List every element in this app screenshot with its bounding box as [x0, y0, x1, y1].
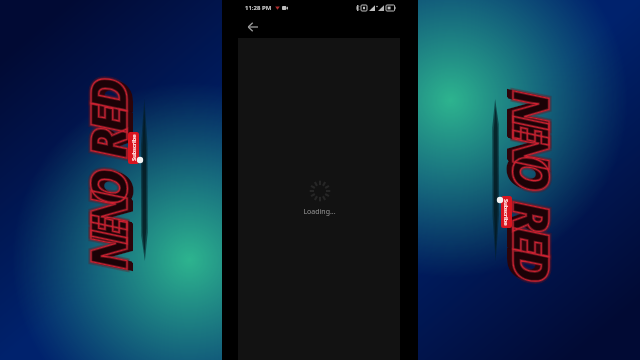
- staticText: NENO: [79, 183, 147, 271]
- staticText: NENO: [75, 182, 143, 270]
- staticText: RED: [74, 83, 142, 159]
- staticText: RED: [74, 83, 142, 159]
- staticText: NENO: [492, 88, 560, 176]
- staticText: RED: [74, 83, 142, 159]
- staticText: NENO: [74, 182, 142, 270]
- staticText: NENO: [496, 89, 564, 177]
- staticText: NENO: [493, 89, 561, 177]
- staticText: NENO: [495, 89, 563, 177]
- staticText: NENO: [74, 182, 142, 270]
- staticText: RED: [76, 84, 144, 160]
- staticText: NENO: [76, 182, 144, 270]
- staticText: NENO: [498, 90, 566, 178]
- staticText: NENO: [74, 182, 142, 270]
- staticText: RED: [496, 201, 564, 277]
- staticText: RED: [493, 200, 561, 276]
- staticText: 11:28 PM: [245, 4, 272, 12]
- staticText: NENO: [76, 183, 144, 271]
- staticText: RED: [75, 83, 143, 159]
- staticText: RED: [498, 201, 566, 277]
- staticText: RED: [77, 84, 145, 160]
- staticText: Subscribe: [502, 199, 510, 226]
- staticText: RED: [494, 200, 562, 276]
- staticText: RED: [497, 201, 565, 277]
- staticText: NENO: [74, 182, 142, 270]
- staticText: Subscribe: [130, 134, 138, 161]
- staticText: RED: [79, 84, 147, 160]
- staticText: RED: [76, 83, 144, 159]
- staticText: NENO: [494, 89, 562, 177]
- staticText: RED: [80, 85, 148, 161]
- staticText: NENO: [77, 183, 145, 271]
- staticText: NENO: [79, 183, 147, 271]
- staticText: RED: [498, 201, 566, 277]
- button[interactable]: Back: [246, 20, 260, 34]
- staticText: NENO: [497, 90, 565, 178]
- staticText: RED: [78, 84, 146, 160]
- staticText: Loading...: [303, 207, 336, 217]
- staticText: RED: [496, 200, 564, 276]
- staticText: RED: [74, 83, 142, 159]
- staticText: RED: [492, 199, 560, 275]
- staticText: RED: [79, 84, 147, 160]
- button[interactable]: Subscribe: [128, 132, 139, 164]
- staticText: NENO: [78, 183, 146, 271]
- staticText: NENO: [498, 90, 566, 178]
- staticText: NENO: [498, 90, 566, 178]
- staticText: NENO: [498, 90, 566, 178]
- staticText: RED: [498, 201, 566, 277]
- staticText: NENO: [496, 90, 564, 178]
- button[interactable]: Subscribe: [501, 196, 512, 228]
- staticText: RED: [495, 200, 563, 276]
- staticText: NENO: [80, 184, 148, 272]
- staticText: NENO: [493, 89, 561, 177]
- staticText: RED: [493, 200, 561, 276]
- staticText: RED: [498, 201, 566, 277]
